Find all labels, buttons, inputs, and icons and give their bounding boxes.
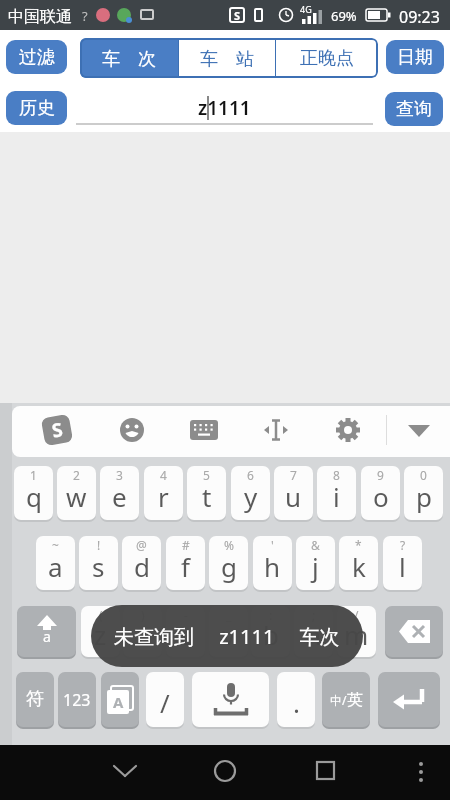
staticText: f [181, 549, 190, 584]
staticText: z1111 [198, 95, 251, 121]
button[interactable]: ; [294, 606, 333, 657]
button[interactable]: 符 [16, 672, 54, 727]
staticText: ' [271, 537, 274, 553]
button[interactable]: 车 次 [80, 38, 178, 78]
button[interactable] [378, 672, 440, 727]
button[interactable]: @ [122, 536, 161, 590]
button[interactable] [119, 417, 145, 443]
button[interactable]: 0 [404, 466, 443, 520]
button[interactable]: 123 [58, 672, 96, 727]
staticText: 7 [290, 467, 297, 483]
button[interactable]: 5 [187, 466, 226, 520]
staticText: e [112, 479, 127, 514]
staticText: j [312, 549, 319, 584]
staticText: 车 次 [102, 46, 156, 71]
staticText: / [160, 685, 170, 720]
staticText: m [344, 617, 369, 652]
staticText: o [373, 479, 389, 514]
button[interactable] [192, 672, 269, 727]
button[interactable]: _ [209, 606, 248, 657]
button[interactable]: : [251, 606, 290, 657]
button[interactable]: 8 [317, 466, 356, 520]
staticText: w [66, 479, 87, 514]
staticText: a [43, 627, 51, 646]
staticText: 8 [333, 467, 340, 483]
button[interactable] [408, 425, 430, 437]
staticText: & [311, 537, 320, 553]
staticText: 6 [247, 467, 254, 483]
staticText: 中国联通 [8, 7, 72, 27]
staticText: g [221, 549, 237, 584]
button[interactable]: 7 [274, 466, 313, 520]
button[interactable]: 正晚点 [276, 38, 378, 78]
button[interactable]: / [337, 606, 376, 657]
button[interactable]: ( [81, 606, 120, 657]
button[interactable] [336, 418, 360, 442]
button[interactable]: / [146, 672, 184, 727]
button[interactable]: % [209, 536, 248, 590]
button[interactable]: 过滤 [6, 40, 67, 74]
button[interactable] [264, 419, 288, 441]
button[interactable]: ) [123, 606, 162, 657]
button[interactable]: . [277, 672, 315, 727]
staticText: u [285, 479, 302, 514]
staticText: p [416, 479, 432, 514]
button[interactable]: * [339, 536, 378, 590]
staticText: 中/ [330, 692, 347, 708]
staticText: r [158, 479, 169, 514]
button[interactable]: 中/ [322, 672, 370, 727]
button[interactable] [316, 761, 335, 780]
staticText: S [234, 8, 241, 23]
button[interactable]: A [101, 672, 139, 727]
staticText: * [355, 537, 362, 553]
staticText: 2 [73, 467, 80, 483]
staticText: t [202, 479, 212, 514]
button[interactable] [190, 420, 218, 440]
button[interactable]: & [296, 536, 335, 590]
button[interactable]: 车 站 [179, 38, 275, 78]
staticText: 3 [116, 467, 123, 483]
button[interactable]: - [166, 606, 205, 657]
staticText: 日期 [397, 46, 433, 69]
button[interactable]: z1111 [76, 92, 373, 124]
staticText: 09:23 [399, 6, 440, 28]
staticText: @ [136, 537, 147, 553]
button[interactable]: # [166, 536, 205, 590]
button[interactable]: 6 [231, 466, 270, 520]
staticText: 未查询到 z1111 车次 [114, 623, 340, 650]
button[interactable]: 历史 [6, 91, 67, 125]
button[interactable]: 1 [14, 466, 53, 520]
button[interactable]: 4 [144, 466, 183, 520]
staticText: 符 [26, 688, 44, 711]
button[interactable]: a [17, 606, 76, 657]
button[interactable]: ? [383, 536, 422, 590]
button[interactable]: 3 [100, 466, 139, 520]
button[interactable] [112, 763, 138, 779]
button[interactable] [385, 606, 443, 657]
staticText: h [264, 549, 281, 584]
button[interactable] [417, 761, 425, 783]
button[interactable]: S [41, 414, 73, 446]
staticText: 1 [30, 467, 37, 483]
button[interactable]: 9 [361, 466, 400, 520]
button[interactable]: 日期 [386, 40, 444, 74]
staticText: v [222, 617, 236, 652]
button[interactable]: ! [79, 536, 118, 590]
button[interactable]: ~ [36, 536, 75, 590]
staticText: % [224, 537, 234, 553]
staticText: y [244, 479, 258, 514]
staticText: 查询 [396, 98, 432, 121]
button[interactable] [214, 760, 236, 782]
staticText: 历史 [19, 97, 55, 120]
button[interactable]: 2 [57, 466, 96, 520]
staticText: ~ [52, 537, 59, 553]
button[interactable]: ' [253, 536, 292, 590]
button[interactable]: 查询 [385, 92, 443, 126]
staticText: q [26, 479, 42, 514]
staticText: 4G [300, 3, 312, 15]
staticText: . [293, 685, 300, 720]
